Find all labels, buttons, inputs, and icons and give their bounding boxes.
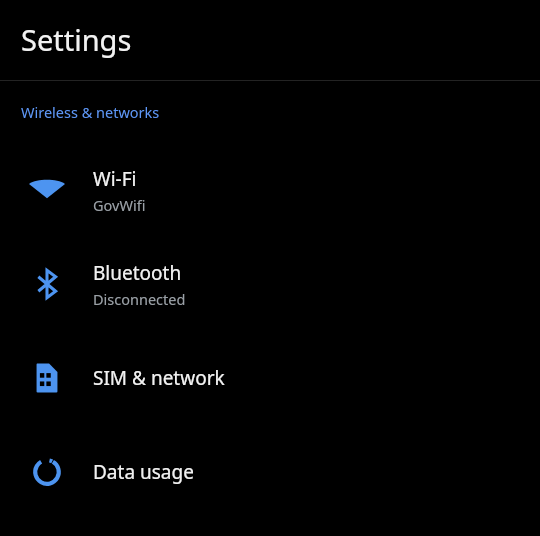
staticText: Bluetooth xyxy=(93,260,182,286)
button[interactable]: SIM and network xyxy=(0,331,540,425)
staticText: Wireless & networks xyxy=(21,102,160,122)
staticText: GovWifi xyxy=(93,195,146,215)
other: SIM and network xyxy=(0,331,93,425)
other: Wi-Fi xyxy=(0,143,93,237)
staticText: Data usage xyxy=(93,459,194,485)
button[interactable]: Data usage xyxy=(0,425,540,519)
staticText: Settings xyxy=(21,20,132,59)
other: Bluetooth xyxy=(0,237,93,331)
staticText: SIM & network xyxy=(93,365,225,391)
button[interactable]: Wi-Fi xyxy=(0,143,540,237)
staticText: Disconnected xyxy=(93,289,186,309)
other: Data usage xyxy=(0,425,93,519)
button[interactable]: Bluetooth xyxy=(0,237,540,331)
staticText: Wi-Fi xyxy=(93,166,137,192)
